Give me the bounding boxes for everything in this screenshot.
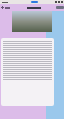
button[interactable]: Back xyxy=(1,6,10,9)
